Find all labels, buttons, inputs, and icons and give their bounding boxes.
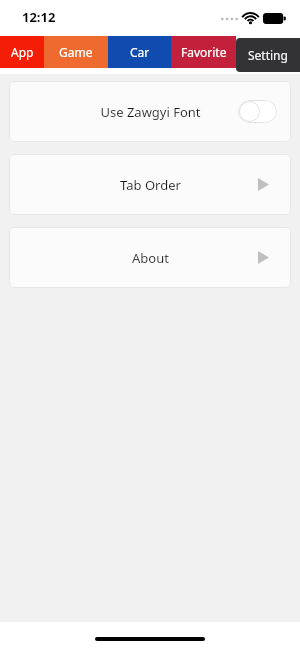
button[interactable]: Game: [44, 36, 108, 68]
button[interactable]: Use Zawgyi Font toggle: [238, 100, 277, 123]
button[interactable]: Car: [108, 36, 171, 68]
staticText: Tab Order: [120, 176, 181, 194]
staticText: Favorite: [181, 44, 227, 60]
staticText: About: [132, 249, 169, 267]
button[interactable]: Setting: [236, 38, 300, 72]
staticText: Use Zawgyi Font: [100, 103, 201, 121]
button[interactable]: About: [9, 227, 291, 288]
button[interactable]: Use Zawgyi Font: [9, 81, 291, 142]
button[interactable]: Tab Order: [9, 154, 291, 215]
staticText: 12:12: [22, 8, 56, 26]
staticText: Car: [130, 44, 150, 60]
staticText: Game: [59, 44, 93, 60]
button[interactable]: App: [0, 36, 44, 68]
button[interactable]: Favorite: [171, 36, 236, 68]
staticText: Setting: [248, 47, 288, 63]
staticText: App: [11, 44, 34, 60]
